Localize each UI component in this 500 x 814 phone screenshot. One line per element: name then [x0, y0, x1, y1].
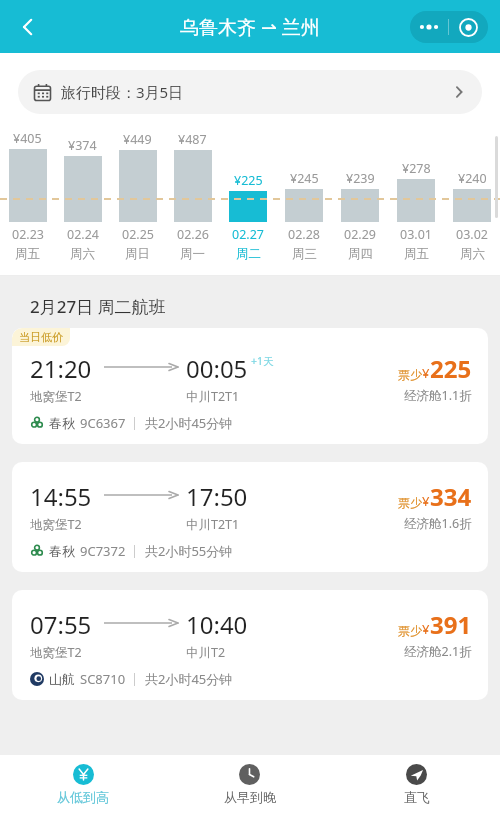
staticText: 共2小时45分钟 — [145, 414, 233, 432]
button[interactable]: 旅行时段：3月5日 — [18, 70, 482, 114]
staticText: 周三 — [292, 246, 317, 262]
staticText: ¥ — [422, 492, 430, 510]
button[interactable]: 14:55 — [12, 462, 488, 572]
staticText: ¥487 — [178, 131, 207, 148]
staticText: 周六 — [70, 246, 95, 262]
staticText: ¥239 — [346, 170, 375, 187]
staticText: 9C6367 — [80, 414, 126, 432]
button[interactable]: ¥487 — [165, 130, 220, 262]
button[interactable]: ¥225 — [220, 130, 276, 262]
staticText: 02.23 — [12, 226, 44, 243]
staticText: 地窝堡T2 — [30, 388, 82, 405]
staticText: 票少 — [398, 623, 422, 638]
staticText: 07:55 — [30, 608, 92, 641]
staticText: 2月27日 周二航班 — [30, 295, 166, 318]
button[interactable]: 从早到晚 — [166, 755, 333, 814]
staticText: 旅行时段：3月5日 — [61, 82, 184, 102]
button[interactable]: 07:55 — [12, 590, 488, 700]
staticText: 02.28 — [288, 226, 320, 243]
staticText: ¥ — [422, 620, 430, 638]
staticText: 周日 — [125, 246, 150, 262]
staticText: 共2小时55分钟 — [145, 542, 233, 560]
staticText: ¥ — [422, 364, 430, 382]
staticText: 当日低价 — [19, 330, 63, 344]
staticText: ¥374 — [68, 137, 97, 154]
staticText: 周二 — [236, 246, 261, 262]
staticText: 经济舱1.6折 — [404, 515, 472, 532]
staticText: 经济舱1.1折 — [404, 387, 472, 404]
staticText: 票少 — [398, 367, 422, 382]
staticText: 周一 — [180, 246, 205, 262]
staticText: 经济舱2.1折 — [404, 643, 472, 660]
staticText: ¥449 — [123, 131, 152, 148]
button[interactable]: Target — [449, 11, 488, 43]
staticText: 从低到高 — [57, 789, 109, 805]
staticText: 02.27 — [232, 226, 264, 243]
staticText: SC8710 — [80, 670, 126, 688]
button[interactable]: Back — [6, 5, 50, 49]
staticText: +1天 — [251, 354, 274, 368]
staticText: 从早到晚 — [224, 789, 276, 805]
staticText: 02.26 — [177, 226, 209, 243]
staticText: 共2小时45分钟 — [145, 670, 233, 688]
staticText: 00:05 — [186, 352, 248, 385]
staticText: 中川T2T1 — [186, 388, 240, 405]
button[interactable]: 当日低价 — [12, 328, 488, 444]
staticText: 直飞 — [404, 789, 430, 805]
button[interactable]: ¥449 — [110, 130, 165, 262]
staticText: 17:50 — [186, 480, 248, 513]
staticText: 14:55 — [30, 480, 92, 513]
button[interactable]: ¥240 — [444, 130, 500, 262]
staticText: 周五 — [404, 246, 429, 262]
staticText: 地窝堡T2 — [30, 516, 82, 533]
staticText: 中川T2T1 — [186, 516, 240, 533]
staticText: 391 — [430, 608, 472, 641]
button[interactable]: ¥278 — [388, 130, 444, 262]
staticText: ¥225 — [234, 172, 263, 189]
button[interactable]: ¥239 — [332, 130, 388, 262]
button[interactable]: ¥374 — [55, 130, 110, 262]
staticText: ¥245 — [290, 170, 319, 187]
staticText: 02.24 — [67, 226, 99, 243]
staticText: 地窝堡T2 — [30, 644, 82, 661]
button[interactable]: 直飞 — [333, 755, 500, 814]
staticText: 334 — [430, 480, 472, 513]
staticText: 票少 — [398, 495, 422, 510]
button[interactable]: 从低到高 — [0, 755, 166, 814]
staticText: 02.25 — [122, 226, 154, 243]
staticText: 21:20 — [30, 352, 92, 385]
staticText: ¥405 — [13, 130, 42, 147]
staticText: 9C7372 — [80, 542, 126, 560]
staticText: 周四 — [348, 246, 373, 262]
staticText: 周五 — [15, 246, 40, 262]
staticText: ¥278 — [402, 160, 431, 177]
button[interactable]: ¥405 — [0, 130, 55, 262]
staticText: 03.02 — [456, 226, 488, 243]
staticText: 春秋 — [49, 415, 75, 431]
staticText: 周六 — [460, 246, 485, 262]
staticText: 03.01 — [400, 226, 432, 243]
staticText: ¥240 — [458, 170, 487, 187]
staticText: 10:40 — [186, 608, 248, 641]
staticText: 02.29 — [344, 226, 376, 243]
staticText: 山航 — [49, 671, 75, 687]
staticText: 中川T2 — [186, 644, 226, 661]
staticText: 225 — [430, 352, 472, 385]
button[interactable]: More options — [410, 11, 448, 43]
staticText: 春秋 — [49, 543, 75, 559]
staticText: 乌鲁木齐 ⇀ 兰州 — [180, 14, 320, 40]
button[interactable]: ¥245 — [276, 130, 332, 262]
